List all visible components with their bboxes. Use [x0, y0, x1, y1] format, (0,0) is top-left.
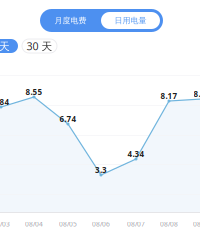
staticText: 4.34 [127, 149, 144, 159]
staticText: 08/06 [92, 220, 110, 228]
staticText: 7天 [0, 39, 10, 53]
staticText: 08/03 [0, 220, 10, 228]
staticText: 6.74 [59, 114, 76, 124]
staticText: 8.17 [160, 91, 177, 101]
staticText: 3.3 [95, 165, 107, 175]
staticText: 月度电费 [54, 16, 86, 25]
staticText: 8.55 [25, 87, 42, 97]
staticText: 9.84 [0, 97, 9, 107]
button[interactable]: 日用电量 [101, 12, 160, 29]
button[interactable]: 30 天 [22, 39, 57, 53]
staticText: 08/05 [59, 220, 77, 228]
staticText: 08/04 [25, 220, 43, 228]
staticText: 30 天 [26, 39, 52, 53]
staticText: 8.91 [193, 89, 200, 99]
staticText: 日用电量 [114, 16, 146, 25]
button[interactable]: 月度电费 [40, 9, 101, 32]
staticText: 08/07 [127, 220, 145, 228]
staticText: 08/09 [193, 220, 200, 228]
button[interactable]: 7天 [0, 39, 18, 53]
staticText: 08/08 [160, 220, 178, 228]
